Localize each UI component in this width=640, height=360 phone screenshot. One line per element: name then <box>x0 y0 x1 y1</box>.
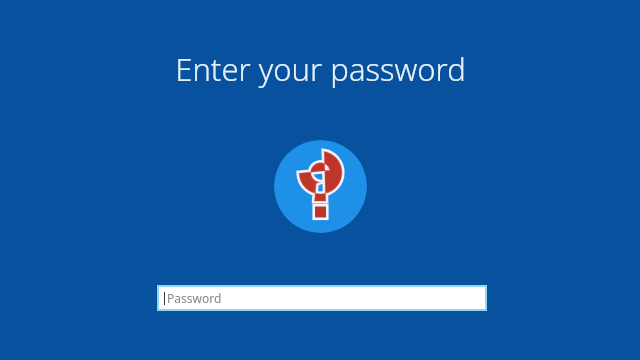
button[interactable]: Password <box>159 287 485 309</box>
staticText: Password <box>167 290 222 306</box>
staticText: Enter your password <box>175 48 466 90</box>
button[interactable]: Account picture, password hint <box>274 140 367 233</box>
